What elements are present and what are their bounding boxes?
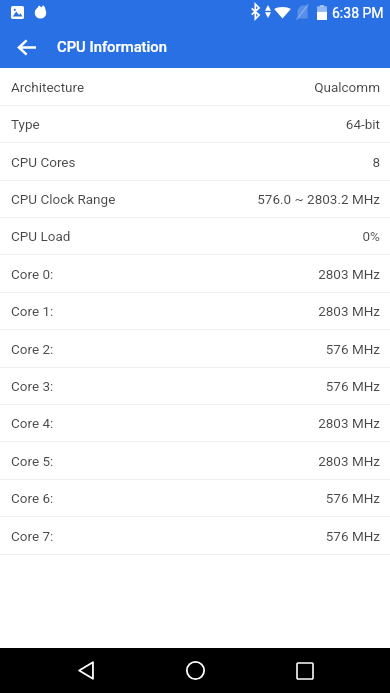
button[interactable]: CPU Cores <box>0 144 390 180</box>
button[interactable]: Architecture <box>0 69 390 105</box>
button[interactable]: Type <box>0 106 390 142</box>
staticText: Core 2: <box>11 341 54 357</box>
button[interactable]: CPU Clock Range <box>0 181 390 217</box>
staticText: Core 6: <box>11 490 54 506</box>
button[interactable]: Core 3: <box>0 368 390 404</box>
staticText: 576.0 ~ 2803.2 MHz <box>257 191 380 207</box>
button[interactable]: Back <box>62 648 110 693</box>
staticText: 2803 MHz <box>318 266 380 282</box>
staticText: CPU Clock Range <box>11 191 116 207</box>
button[interactable]: Navigate up <box>9 29 45 65</box>
staticText: 576 MHz <box>325 528 380 544</box>
staticText: 2803 MHz <box>318 453 380 469</box>
button[interactable]: Core 2: <box>0 331 390 367</box>
staticText: Architecture <box>11 79 85 95</box>
staticText: Core 7: <box>11 528 54 544</box>
staticText: Core 0: <box>11 266 54 282</box>
button[interactable]: Home <box>171 648 219 693</box>
staticText: 64-bit <box>345 116 380 132</box>
button[interactable]: Core 1: <box>0 293 390 329</box>
button[interactable]: Core 6: <box>0 480 390 516</box>
staticText: 0% <box>362 228 380 244</box>
button[interactable]: CPU Load <box>0 218 390 254</box>
button[interactable]: Core 0: <box>0 256 390 292</box>
staticText: Qualcomm <box>314 79 380 95</box>
button[interactable]: Core 4: <box>0 405 390 441</box>
staticText: Core 1: <box>11 303 54 319</box>
staticText: CPU Cores <box>11 154 76 170</box>
staticText: 8 <box>372 154 380 170</box>
button[interactable]: Recent apps <box>281 648 329 693</box>
staticText: 6:38 PM <box>332 5 384 21</box>
button[interactable]: Core 7: <box>0 518 390 554</box>
staticText: 2803 MHz <box>318 415 380 431</box>
staticText: 2803 MHz <box>318 303 380 319</box>
staticText: Type <box>11 116 40 132</box>
staticText: 576 MHz <box>325 490 380 506</box>
button[interactable]: Core 5: <box>0 443 390 479</box>
staticText: CPU Information <box>57 38 167 55</box>
staticText: Core 4: <box>11 415 54 431</box>
staticText: Core 3: <box>11 378 54 394</box>
staticText: Core 5: <box>11 453 54 469</box>
staticText: 576 MHz <box>325 341 380 357</box>
staticText: 576 MHz <box>325 378 380 394</box>
staticText: CPU Load <box>11 228 71 244</box>
